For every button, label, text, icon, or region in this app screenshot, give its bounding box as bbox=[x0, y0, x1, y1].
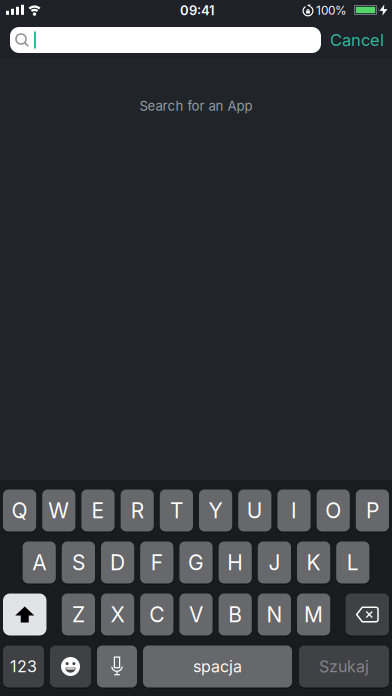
button[interactable]: Szukaj bbox=[299, 645, 389, 687]
button[interactable]: W bbox=[42, 489, 75, 531]
button[interactable]: Cancel bbox=[330, 30, 384, 50]
staticText: F bbox=[151, 550, 163, 575]
button[interactable]: B bbox=[219, 593, 252, 635]
staticText: T bbox=[170, 498, 183, 523]
staticText: Z bbox=[72, 602, 85, 627]
staticText: V bbox=[189, 602, 203, 627]
button[interactable]: R bbox=[121, 489, 154, 531]
staticText: H bbox=[227, 550, 243, 575]
button[interactable]: G bbox=[179, 541, 213, 583]
staticText: G bbox=[188, 550, 204, 575]
button[interactable]: Delete bbox=[345, 593, 389, 635]
staticText: Cancel bbox=[330, 30, 384, 50]
button[interactable]: Y bbox=[199, 489, 232, 531]
button[interactable]: Emoji bbox=[50, 645, 91, 687]
staticText: A bbox=[32, 550, 46, 575]
button[interactable]: N bbox=[258, 593, 291, 635]
staticText: L bbox=[347, 550, 359, 575]
staticText: S bbox=[72, 550, 85, 575]
staticText: W bbox=[48, 498, 69, 523]
button[interactable]: T bbox=[160, 489, 193, 531]
button[interactable]: X bbox=[101, 593, 134, 635]
staticText: X bbox=[111, 602, 125, 627]
button[interactable]: M bbox=[297, 593, 330, 635]
button[interactable]: Z bbox=[62, 593, 95, 635]
staticText: 09:41 bbox=[180, 3, 214, 18]
staticText: U bbox=[247, 498, 263, 523]
button[interactable]: A bbox=[23, 541, 56, 583]
button[interactable]: Search bbox=[10, 27, 321, 53]
button[interactable]: O bbox=[317, 489, 350, 531]
button[interactable]: H bbox=[219, 541, 252, 583]
button[interactable]: spacja bbox=[143, 645, 292, 687]
button[interactable]: F bbox=[140, 541, 173, 583]
staticText: I bbox=[291, 498, 297, 523]
button[interactable]: J bbox=[258, 541, 291, 583]
button[interactable]: E bbox=[81, 489, 115, 531]
staticText: C bbox=[149, 602, 164, 627]
staticText: E bbox=[91, 498, 104, 523]
button[interactable]: C bbox=[140, 593, 173, 635]
staticText: spacja bbox=[193, 657, 242, 676]
staticText: P bbox=[366, 498, 379, 523]
staticText: B bbox=[228, 602, 242, 627]
button[interactable]: I bbox=[277, 489, 311, 531]
button[interactable]: K bbox=[297, 541, 330, 583]
staticText: Y bbox=[209, 498, 223, 523]
staticText: N bbox=[266, 602, 282, 627]
staticText: 123 bbox=[10, 657, 37, 676]
staticText: R bbox=[131, 498, 144, 523]
button[interactable]: Q bbox=[3, 489, 36, 531]
staticText: Search for an App bbox=[139, 98, 252, 114]
staticText: J bbox=[268, 550, 280, 575]
staticText: M bbox=[304, 602, 323, 627]
button[interactable]: S bbox=[62, 541, 95, 583]
button[interactable]: V bbox=[179, 593, 213, 635]
button[interactable]: D bbox=[101, 541, 134, 583]
button[interactable]: P bbox=[356, 489, 389, 531]
staticText: K bbox=[307, 550, 321, 575]
button[interactable]: U bbox=[238, 489, 271, 531]
staticText: O bbox=[325, 498, 341, 523]
button[interactable]: 123 bbox=[3, 645, 44, 687]
button[interactable]: L bbox=[336, 541, 369, 583]
button[interactable]: Shift bbox=[3, 593, 46, 635]
staticText: Q bbox=[12, 498, 28, 523]
staticText: 100% bbox=[316, 3, 347, 18]
button[interactable]: Dictate bbox=[97, 645, 137, 687]
staticText: D bbox=[110, 550, 125, 575]
staticText: Szukaj bbox=[319, 657, 369, 676]
